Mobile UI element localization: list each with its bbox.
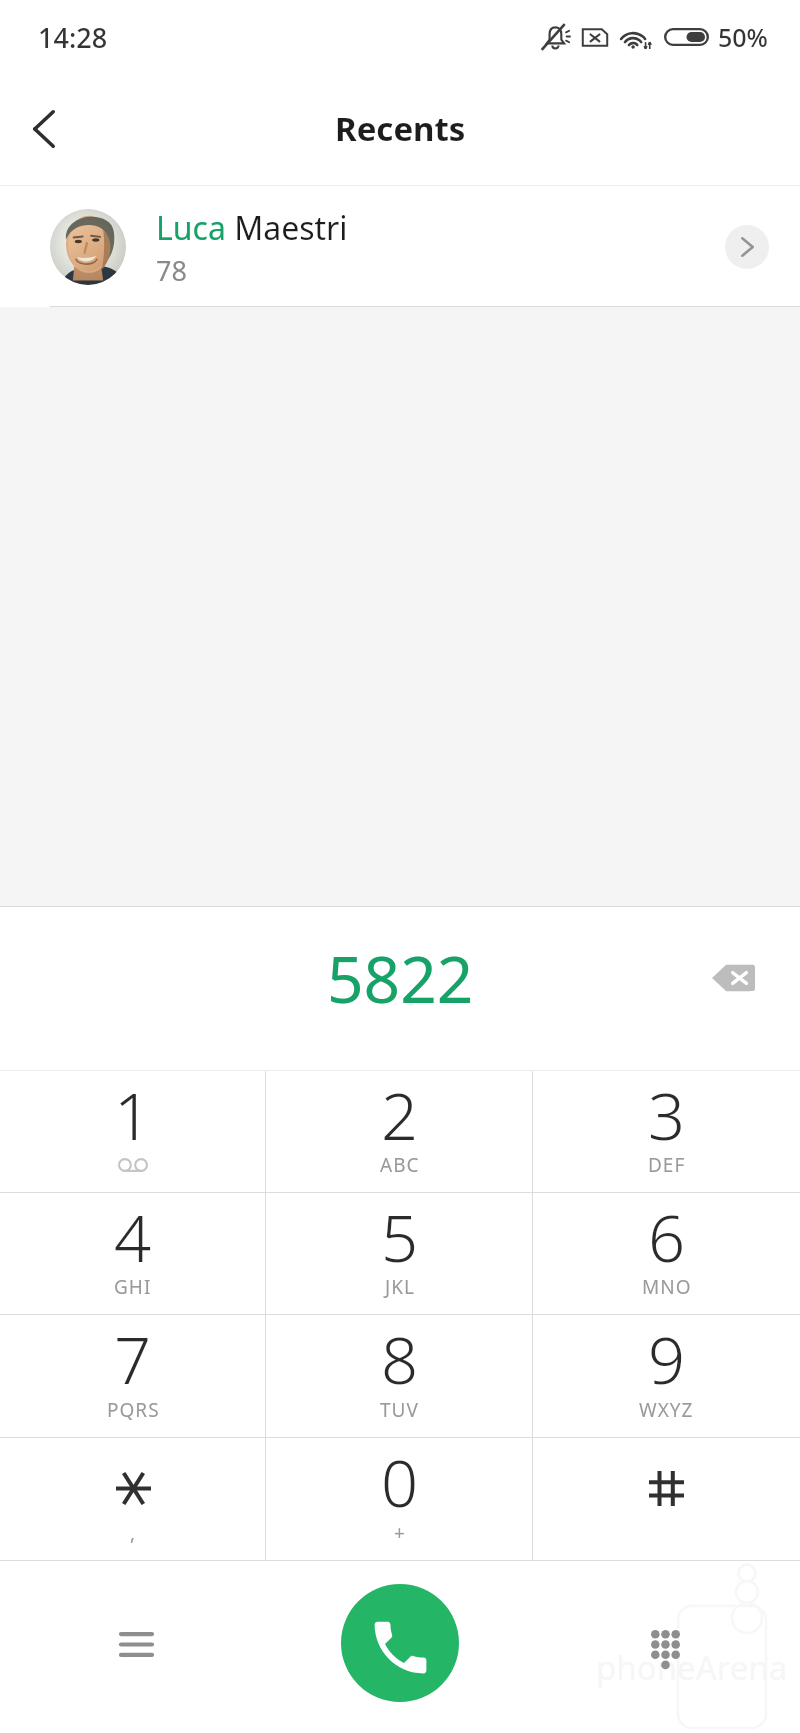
button[interactable]: pound xyxy=(533,1438,800,1560)
button[interactable]: Back xyxy=(14,99,74,159)
button[interactable]: Menu xyxy=(100,1608,172,1680)
button[interactable]: 4 xyxy=(0,1193,266,1314)
button[interactable]: 1 xyxy=(0,1071,266,1192)
button[interactable]: 3 xyxy=(533,1071,800,1192)
staticText: , xyxy=(130,1520,137,1546)
staticText: 6 xyxy=(648,1193,686,1281)
button[interactable]: Backspace xyxy=(693,938,773,1018)
button[interactable]: 8 xyxy=(266,1315,533,1437)
staticText: 78 xyxy=(156,252,187,289)
button[interactable]: 2 xyxy=(266,1071,533,1192)
staticText: JKL xyxy=(385,1274,415,1300)
staticText: 1 xyxy=(114,1071,152,1159)
staticText: Recents xyxy=(335,106,466,151)
button[interactable]: star xyxy=(0,1438,266,1560)
staticText: Luca Maestri xyxy=(156,206,348,250)
staticText: 50% xyxy=(718,20,768,54)
button[interactable]: Call details xyxy=(725,225,769,269)
staticText: 8 xyxy=(381,1315,419,1403)
staticText: TUV xyxy=(380,1397,419,1423)
button[interactable]: 5 xyxy=(266,1193,533,1314)
staticText: WXYZ xyxy=(639,1397,694,1423)
staticText: 4 xyxy=(114,1193,152,1281)
staticText: 5 xyxy=(381,1193,419,1281)
staticText: 9 xyxy=(648,1315,686,1403)
button[interactable]: Luca Maestri xyxy=(0,186,800,307)
button[interactable]: 6 xyxy=(533,1193,800,1314)
staticText: 7 xyxy=(114,1315,152,1403)
button[interactable]: 7 xyxy=(0,1315,266,1437)
staticText: DEF xyxy=(648,1152,686,1178)
staticText: GHI xyxy=(114,1274,152,1300)
staticText: 5822 xyxy=(327,935,474,1022)
button[interactable]: Call xyxy=(341,1584,459,1702)
staticText: 0 xyxy=(381,1438,419,1526)
button[interactable]: Dialpad xyxy=(629,1613,701,1685)
staticText: MNO xyxy=(642,1274,692,1300)
staticText: 14:28 xyxy=(38,19,108,56)
staticText: 3 xyxy=(648,1071,686,1159)
staticText: phoneArena xyxy=(596,1645,788,1690)
staticText: PQRS xyxy=(107,1397,160,1423)
staticText: + xyxy=(394,1520,406,1546)
button[interactable]: 0 xyxy=(266,1438,533,1560)
staticText: 2 xyxy=(381,1071,419,1159)
button[interactable]: 9 xyxy=(533,1315,800,1437)
staticText: ABC xyxy=(380,1152,420,1178)
